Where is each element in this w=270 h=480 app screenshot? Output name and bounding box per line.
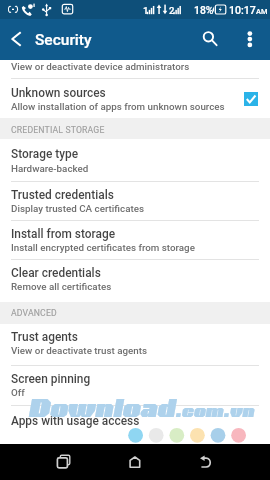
button[interactable]: More options bbox=[239, 25, 261, 47]
button[interactable]: View or deactivate device administrators bbox=[0, 60, 270, 78]
staticText: 2 bbox=[169, 5, 175, 16]
staticText: Display trusted CA certificates bbox=[11, 203, 145, 214]
staticText: Hardware-backed bbox=[11, 163, 89, 174]
staticText: Remove all certificates bbox=[11, 281, 112, 292]
staticText: Install from storage bbox=[11, 227, 116, 241]
button[interactable]: Home bbox=[123, 452, 147, 476]
staticText: Screen pinning bbox=[11, 372, 91, 386]
staticText: CREDENTIAL STORAGE bbox=[11, 125, 105, 135]
staticText: ADVANCED bbox=[11, 308, 57, 318]
button[interactable]: Navigate up bbox=[4, 27, 29, 52]
staticText: View or deactivate device administrators bbox=[11, 61, 190, 72]
staticText: Apps with usage access bbox=[11, 414, 140, 428]
button[interactable]: Back bbox=[194, 452, 218, 476]
staticText: 18% bbox=[194, 4, 214, 16]
button[interactable]: Apps with usage access bbox=[0, 406, 270, 445]
staticText: Allow installation of apps from unknown … bbox=[11, 101, 225, 112]
staticText: 10:17 bbox=[229, 4, 256, 16]
staticText: Download bbox=[28, 392, 175, 422]
button[interactable]: Screen pinning bbox=[0, 366, 270, 405]
staticText: Clear credentials bbox=[11, 266, 101, 280]
button[interactable]: Install from storage bbox=[0, 221, 270, 259]
staticText: Off bbox=[11, 387, 25, 398]
button[interactable]: Clear credentials bbox=[0, 260, 270, 302]
button[interactable]: Recent apps bbox=[52, 452, 76, 476]
button[interactable]: Trusted credentials bbox=[0, 182, 270, 220]
staticText: Trusted credentials bbox=[11, 188, 114, 202]
staticText: Unknown sources bbox=[11, 86, 106, 100]
staticText: .com.vn bbox=[175, 400, 254, 420]
staticText: AM bbox=[256, 7, 268, 16]
staticText: Install encrypted certificates from stor… bbox=[11, 242, 195, 253]
button[interactable]: Search bbox=[197, 25, 223, 51]
staticText: Trust agents bbox=[11, 330, 78, 344]
staticText: View or deactivate trust agents bbox=[11, 345, 148, 356]
button[interactable]: Trust agents bbox=[0, 324, 270, 365]
staticText: Storage type bbox=[11, 147, 79, 161]
button[interactable]: Storage type bbox=[0, 139, 270, 181]
staticText: Security bbox=[35, 31, 92, 49]
button[interactable]: Unknown sources bbox=[0, 79, 270, 118]
staticText: 1 bbox=[143, 5, 149, 16]
